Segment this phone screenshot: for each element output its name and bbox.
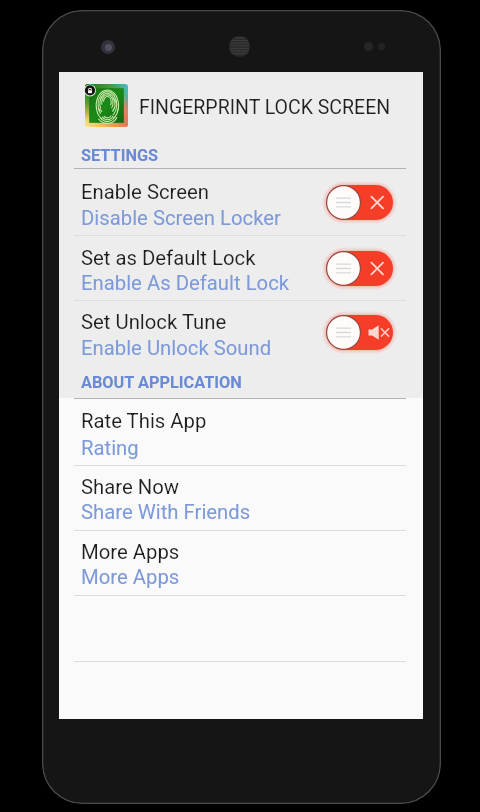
staticText: More Apps [81,540,180,564]
staticText: Rate This App [81,409,207,433]
staticText: SETTINGS [81,146,159,165]
button[interactable] [59,399,423,465]
staticText: FINGERPRINT LOCK SCREEN [139,96,391,119]
staticText: Set as Default Lock [81,246,256,270]
button[interactable] [59,466,423,530]
staticText: Enable As Default Lock [81,271,290,295]
button[interactable] [59,236,423,300]
button[interactable] [59,531,423,595]
button[interactable] [59,170,423,235]
staticText: Enable Unlock Sound [81,336,272,360]
staticText: Disable Screen Locker [81,206,281,230]
staticText: Set Unlock Tune [81,310,227,334]
button[interactable]: Unlock tune toggle [326,315,393,350]
staticText: ABOUT APPLICATION [81,373,242,392]
staticText: Rating [81,436,139,460]
button[interactable]: Set as default lock toggle [326,251,393,286]
staticText: More Apps [81,565,180,589]
staticText: Share With Friends [81,500,251,524]
button[interactable]: Enable screen lock toggle [326,185,393,220]
staticText: Enable Screen [81,180,210,204]
button[interactable] [59,301,423,365]
staticText: Share Now [81,475,180,499]
